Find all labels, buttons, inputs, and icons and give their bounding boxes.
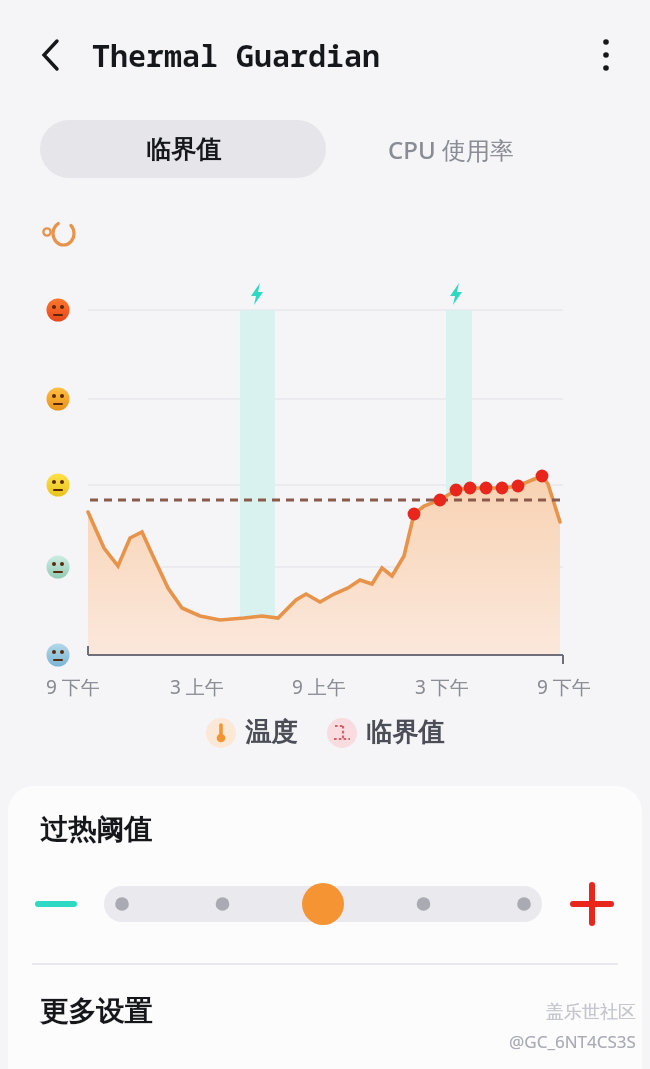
- button[interactable]: Back: [26, 31, 74, 79]
- staticText: 过热阈值: [40, 812, 152, 847]
- staticText: Thermal Guardian: [92, 35, 380, 76]
- button[interactable]: More options: [582, 31, 630, 79]
- staticText: 温度: [245, 716, 297, 749]
- button[interactable]: CPU 使用率: [326, 120, 576, 178]
- button[interactable]: 更多设置: [8, 965, 642, 1057]
- staticText: 更多设置: [40, 994, 152, 1029]
- button[interactable]: 临界值: [327, 716, 444, 749]
- button[interactable]: [104, 880, 542, 928]
- staticText: @GC_6NT4CS3S: [509, 1030, 636, 1053]
- staticText: 临界值: [366, 716, 444, 749]
- button[interactable]: 临界值: [40, 120, 326, 178]
- staticText: 临界值: [146, 134, 221, 165]
- staticText: 盖乐世社区: [546, 1001, 636, 1024]
- button[interactable]: 温度: [206, 716, 297, 749]
- button[interactable]: Decrease threshold: [8, 869, 104, 939]
- staticText: 3 下午: [415, 674, 469, 700]
- staticText: 9 下午: [46, 674, 100, 700]
- staticText: 3 上午: [170, 674, 224, 700]
- button[interactable]: Increase threshold: [542, 869, 642, 939]
- staticText: CPU 使用率: [388, 133, 514, 166]
- staticText: 9 上午: [292, 674, 346, 700]
- staticText: 9 下午: [537, 674, 591, 700]
